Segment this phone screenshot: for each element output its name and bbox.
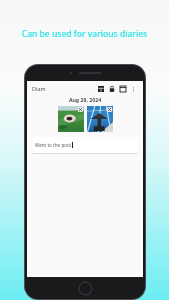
button[interactable]: New entry [117, 83, 128, 94]
button[interactable]: Calendar view [95, 83, 106, 94]
button[interactable]: Remove photo [107, 107, 112, 112]
staticText: Can be used for various diaries [0, 28, 169, 40]
staticText: Diam [32, 85, 46, 92]
button[interactable]: Photo two [87, 106, 113, 132]
button[interactable]: Photo one [58, 106, 84, 132]
button[interactable]: Remove photo [78, 107, 83, 112]
staticText: Aug 28, 2024 [27, 96, 143, 103]
button[interactable]: More options [128, 84, 138, 94]
other: Home [79, 282, 92, 295]
button[interactable]: Lock [106, 83, 117, 94]
button[interactable]: Went to the pool [32, 137, 138, 153]
staticText: Went to the pool [35, 142, 71, 148]
